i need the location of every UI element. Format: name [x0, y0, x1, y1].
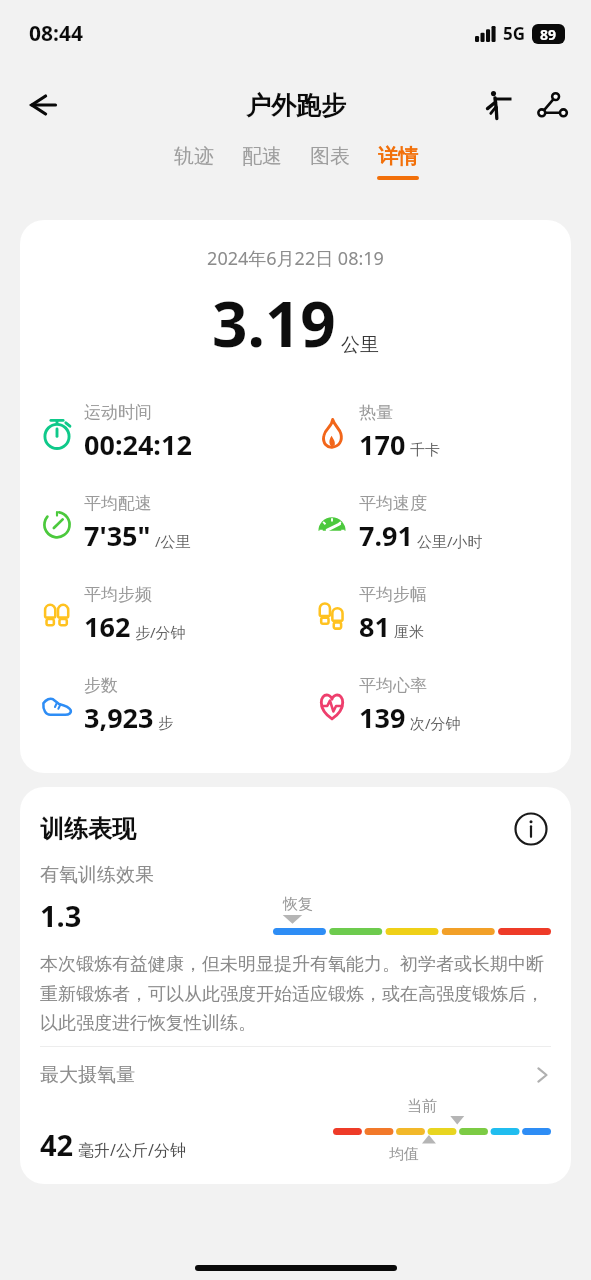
button[interactable]: 平均步频 — [20, 569, 295, 660]
staticText: 公里 — [341, 333, 379, 357]
button[interactable]: 平均心率 — [295, 660, 571, 751]
button[interactable]: Workout type — [473, 80, 523, 130]
staticText: 89 — [540, 25, 557, 44]
staticText: 42 — [40, 1125, 74, 1164]
button[interactable]: Info — [511, 809, 551, 849]
button[interactable]: 图表 — [309, 144, 351, 180]
staticText: 最大摄氧量 — [40, 1063, 135, 1087]
staticText: 有氧训练效果 — [40, 863, 154, 887]
staticText: 户外跑步 — [246, 90, 346, 121]
button[interactable]: 运动时间 — [20, 387, 295, 478]
staticText: 162 — [84, 608, 131, 645]
button[interactable]: 2024年6月22日 08:19 — [20, 220, 571, 773]
staticText: 步/分钟 — [135, 622, 186, 642]
staticText: 平均步幅 — [359, 584, 427, 605]
button[interactable]: 详情 — [377, 144, 419, 180]
staticText: 配速 — [242, 144, 282, 169]
staticText: 恢复 — [283, 895, 313, 914]
staticText: 训练表现 — [40, 814, 136, 844]
staticText: 7.91 — [359, 517, 413, 554]
button[interactable]: 配速 — [241, 144, 283, 180]
staticText: 平均配速 — [84, 493, 152, 514]
staticText: 3,923 — [84, 699, 154, 736]
button[interactable]: 热量 — [295, 387, 571, 478]
staticText: 公里/小时 — [417, 531, 483, 551]
staticText: 次/分钟 — [410, 713, 461, 733]
staticText: 均值 — [389, 1145, 419, 1164]
staticText: 08:44 — [29, 19, 83, 48]
staticText: 平均步频 — [84, 584, 152, 605]
staticText: 步数 — [84, 675, 118, 696]
staticText: 轨迹 — [174, 144, 214, 169]
staticText: 81 — [359, 608, 390, 645]
staticText: 2024年6月22日 08:19 — [20, 246, 571, 271]
staticText: 平均速度 — [359, 493, 427, 514]
staticText: 7'35" — [84, 517, 151, 554]
staticText: 170 — [359, 426, 406, 463]
button[interactable]: 平均速度 — [295, 478, 571, 569]
staticText: 本次锻炼有益健康，但未明显提升有氧能力。初学者或长期中断重新锻炼者，可以从此强度… — [40, 953, 551, 1034]
staticText: 厘米 — [394, 623, 424, 642]
button[interactable]: Back — [14, 77, 70, 133]
staticText: 千卡 — [410, 441, 440, 460]
staticText: 00:24:12 — [84, 426, 192, 463]
staticText: 运动时间 — [84, 402, 152, 423]
staticText: 毫升/公斤/分钟 — [78, 1139, 186, 1161]
staticText: 热量 — [359, 402, 393, 423]
button[interactable]: 最大摄氧量 — [40, 1063, 551, 1087]
staticText: 当前 — [407, 1097, 437, 1116]
button[interactable]: 步数 — [20, 660, 295, 751]
button[interactable]: 轨迹 — [173, 144, 215, 180]
staticText: 平均心率 — [359, 675, 427, 696]
staticText: /公里 — [155, 531, 191, 551]
staticText: 1.3 — [40, 896, 82, 935]
staticText: 图表 — [310, 144, 350, 169]
staticText: 139 — [359, 699, 406, 736]
staticText: 3.19 — [212, 281, 336, 365]
staticText: 5G — [503, 22, 526, 45]
staticText: 步 — [158, 714, 173, 733]
button[interactable]: 平均步幅 — [295, 569, 571, 660]
button[interactable]: 平均配速 — [20, 478, 295, 569]
staticText: 详情 — [378, 144, 418, 169]
button[interactable]: Share — [527, 80, 577, 130]
